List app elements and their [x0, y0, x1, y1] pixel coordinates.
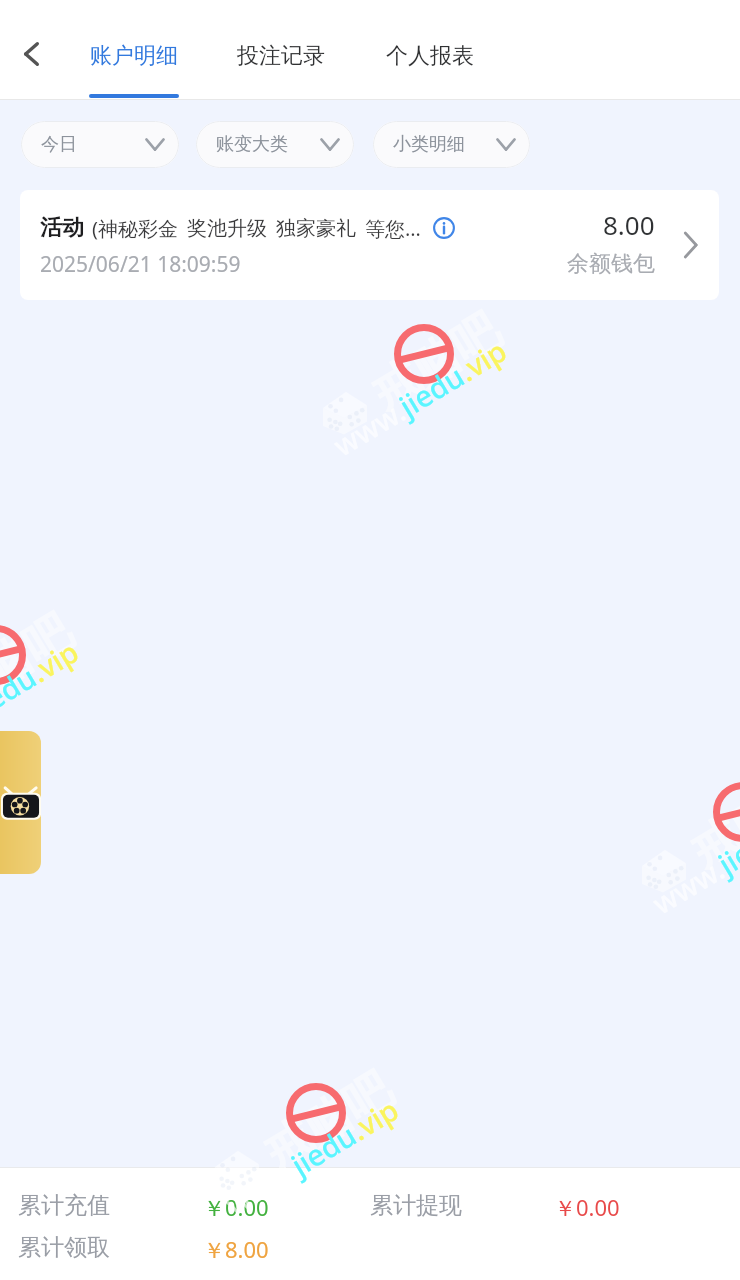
staticText: 戒赌吧: [254, 1061, 402, 1181]
staticText: 个人报表: [386, 42, 474, 70]
staticText: 8.00: [603, 207, 655, 242]
staticText: 独家豪礼: [276, 216, 356, 241]
staticText: 账户明细: [90, 42, 178, 70]
staticText: 戒赌吧: [681, 760, 740, 880]
button[interactable]: Back: [0, 23, 62, 85]
staticText: 活动: [40, 214, 84, 242]
staticText: ￥8.00: [203, 1234, 269, 1264]
button[interactable]: 今日: [21, 121, 179, 168]
staticText: 累计提现: [370, 1191, 462, 1220]
button[interactable]: Live TV: [0, 731, 41, 874]
staticText: jiedu: [392, 356, 471, 425]
staticText: 2025/06/21 18:09:59: [40, 250, 241, 279]
staticText: jiedu: [711, 814, 740, 883]
staticText: .vip: [451, 331, 513, 389]
staticText: www.: [218, 1150, 304, 1223]
staticText: 账变大类: [216, 133, 288, 156]
staticText: 等您…: [365, 215, 421, 242]
staticText: 今日: [41, 133, 77, 156]
staticText: 余额钱包: [567, 250, 655, 278]
staticText: 累计领取: [18, 1233, 110, 1262]
staticText: www.: [645, 849, 731, 922]
staticText: jiedu: [284, 1115, 363, 1184]
button[interactable]: 小类明细: [373, 121, 530, 168]
staticText: .vip: [23, 632, 85, 690]
staticText: ￥0.00: [554, 1192, 620, 1222]
button[interactable]: 活动: [20, 190, 719, 300]
staticText: 戒赌吧: [0, 603, 82, 723]
staticText: jiedu: [0, 657, 43, 726]
staticText: 累计充值: [18, 1191, 110, 1220]
button[interactable]: 账变大类: [196, 121, 354, 168]
staticText: 戒赌吧: [362, 302, 510, 422]
staticText: (神秘彩金: [92, 215, 178, 242]
staticText: www.: [326, 391, 412, 464]
staticText: .vip: [343, 1090, 405, 1148]
button[interactable]: 账户明细: [89, 0, 179, 99]
button[interactable]: 投注记录: [237, 0, 325, 99]
staticText: 奖池升级: [187, 216, 267, 241]
button[interactable]: 个人报表: [386, 0, 474, 99]
staticText: 投注记录: [237, 42, 325, 70]
staticText: ￥0.00: [203, 1192, 269, 1222]
staticText: 小类明细: [393, 133, 465, 156]
